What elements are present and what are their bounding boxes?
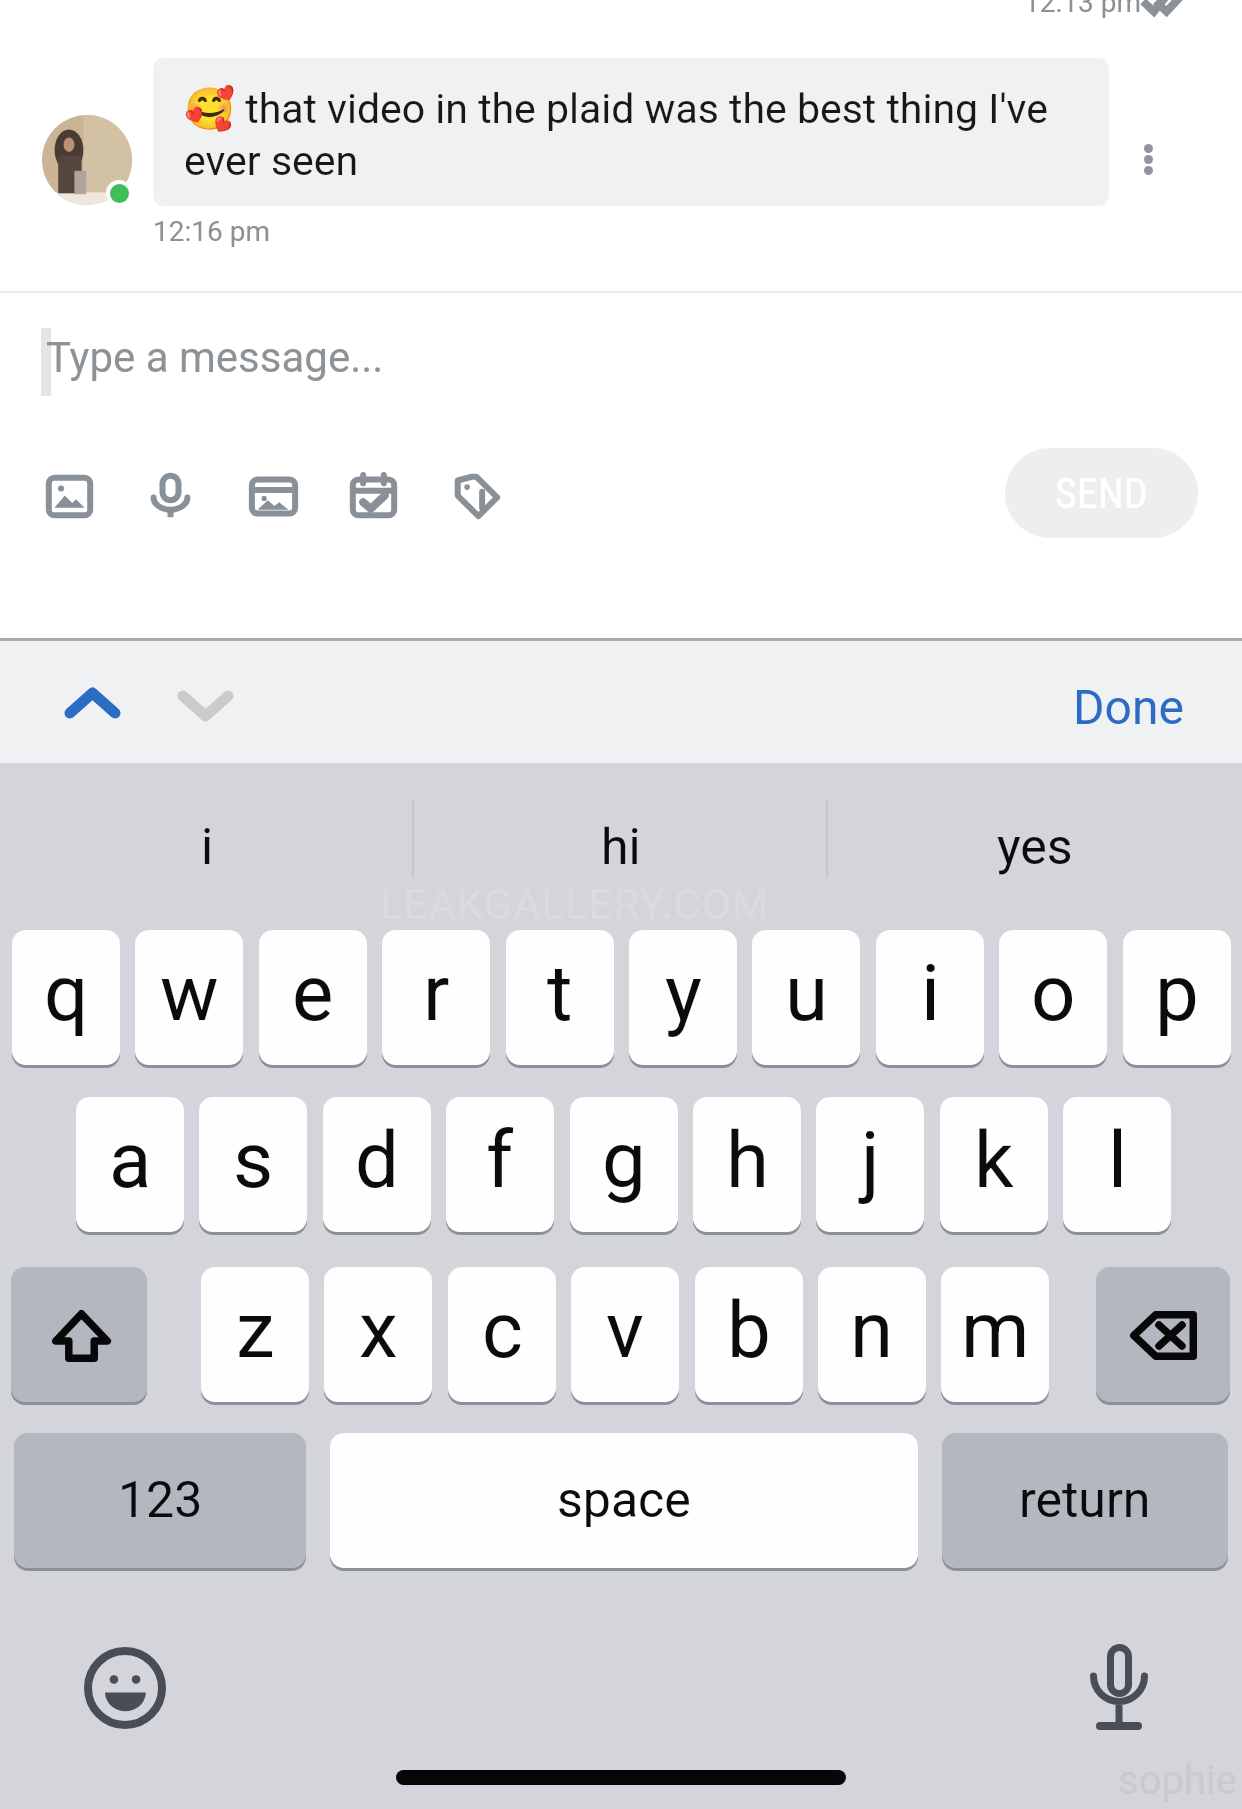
button[interactable]: d: [323, 1097, 431, 1232]
staticText: yes: [997, 818, 1073, 877]
button[interactable]: Shift: [11, 1267, 147, 1402]
staticText: j: [861, 1115, 880, 1206]
button[interactable]: space: [330, 1433, 918, 1568]
button[interactable]: e: [259, 930, 367, 1065]
button[interactable]: u: [752, 930, 860, 1065]
button[interactable]: j: [816, 1097, 924, 1232]
button[interactable]: x: [324, 1267, 432, 1402]
button[interactable]: 123: [14, 1433, 306, 1568]
staticText: w: [160, 948, 219, 1039]
button[interactable]: p: [1123, 930, 1231, 1065]
button[interactable]: Add photo: [46, 473, 93, 520]
button[interactable]: Price tag: [453, 473, 500, 520]
button[interactable]: i: [0, 765, 414, 930]
button[interactable]: g: [570, 1097, 678, 1232]
button[interactable]: w: [135, 930, 243, 1065]
button[interactable]: i: [876, 930, 984, 1065]
button[interactable]: Add media: [250, 473, 297, 520]
button[interactable]: Voice input: [1086, 1638, 1152, 1734]
staticText: Done: [1073, 679, 1184, 735]
staticText: return: [1019, 1471, 1151, 1530]
staticText: t: [547, 948, 573, 1039]
staticText: f: [486, 1115, 514, 1206]
button[interactable]: hi: [414, 765, 828, 930]
button[interactable]: More options: [1114, 109, 1182, 209]
button[interactable]: n: [818, 1267, 926, 1402]
button[interactable]: [42, 115, 132, 205]
button[interactable]: m: [941, 1267, 1049, 1402]
button[interactable]: b: [695, 1267, 803, 1402]
button[interactable]: Schedule: [350, 473, 397, 520]
button[interactable]: Next field: [158, 668, 254, 752]
staticText: x: [359, 1285, 398, 1376]
button[interactable]: k: [940, 1097, 1048, 1232]
button[interactable]: return: [942, 1433, 1228, 1568]
staticText: Type a message...: [46, 333, 384, 382]
staticText: z: [236, 1285, 275, 1376]
staticText: i: [921, 948, 940, 1039]
staticText: 12:13 pm: [1024, 0, 1141, 19]
staticText: n: [850, 1285, 894, 1376]
staticText: o: [1031, 948, 1076, 1039]
button[interactable]: l: [1063, 1097, 1171, 1232]
staticText: e: [292, 948, 334, 1039]
staticText: b: [727, 1285, 771, 1376]
button[interactable]: Record audio: [147, 473, 194, 520]
staticText: l: [1108, 1115, 1127, 1206]
staticText: r: [423, 948, 450, 1039]
button[interactable]: Backspace: [1096, 1267, 1230, 1402]
staticText: v: [606, 1285, 644, 1376]
staticText: 🥰 that video in the plaid was the best t…: [184, 85, 1048, 185]
button[interactable]: r: [382, 930, 490, 1065]
button[interactable]: y: [629, 930, 737, 1065]
staticText: q: [44, 948, 89, 1039]
button[interactable]: Done: [1063, 668, 1193, 746]
staticText: g: [602, 1115, 646, 1206]
staticText: i: [201, 818, 214, 877]
staticText: a: [109, 1115, 152, 1206]
button[interactable]: a: [76, 1097, 184, 1232]
button[interactable]: yes: [828, 765, 1242, 930]
staticText: y: [665, 948, 702, 1039]
staticText: p: [1155, 948, 1199, 1039]
staticText: h: [726, 1115, 769, 1206]
staticText: s: [233, 1115, 274, 1206]
staticText: 12:16 pm: [153, 215, 270, 248]
staticText: c: [482, 1285, 523, 1376]
button[interactable]: c: [448, 1267, 556, 1402]
button[interactable]: s: [199, 1097, 307, 1232]
staticText: m: [961, 1285, 1030, 1376]
staticText: k: [974, 1115, 1014, 1206]
button[interactable]: 🥰 that video in the plaid was the best t…: [153, 58, 1109, 206]
button[interactable]: h: [693, 1097, 801, 1232]
button[interactable]: Previous field: [45, 668, 141, 752]
button[interactable]: q: [12, 930, 120, 1065]
staticText: u: [785, 948, 828, 1039]
staticText: 123: [118, 1471, 203, 1530]
button[interactable]: z: [201, 1267, 309, 1402]
staticText: hi: [601, 818, 641, 877]
staticText: SEND: [1055, 469, 1148, 518]
staticText: d: [355, 1115, 399, 1206]
button[interactable]: f: [446, 1097, 554, 1232]
button[interactable]: o: [999, 930, 1107, 1065]
button[interactable]: v: [571, 1267, 679, 1402]
button[interactable]: SEND: [1005, 448, 1198, 538]
button[interactable]: t: [506, 930, 614, 1065]
button[interactable]: Emoji: [84, 1647, 166, 1729]
staticText: space: [557, 1471, 691, 1530]
staticText: sophie: [1118, 1757, 1237, 1804]
